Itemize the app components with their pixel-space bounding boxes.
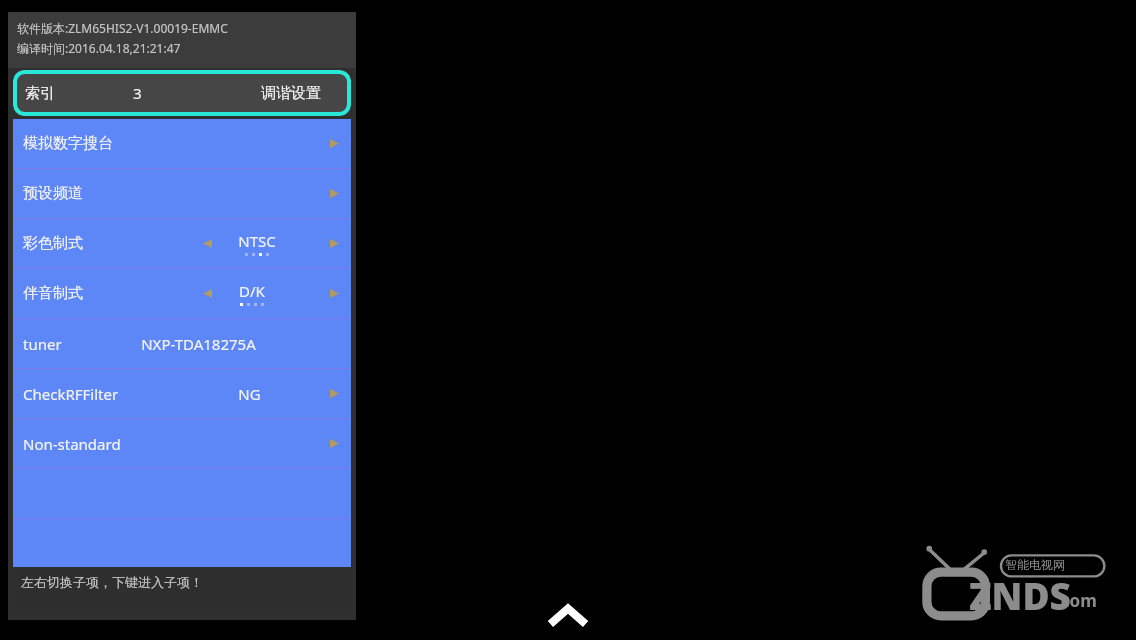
staticText: NTSC [238, 231, 276, 251]
button[interactable]: 伴音制式 [13, 269, 351, 318]
button[interactable]: 预设频道 [13, 169, 351, 218]
button[interactable]: 索引 [13, 70, 351, 116]
staticText: 左右切换子项，下键进入子项！ [21, 574, 203, 590]
staticText: Non-standard [23, 434, 121, 454]
staticText: 调谐设置 [261, 84, 321, 103]
staticText: ZNDS [969, 570, 1071, 620]
staticText: 编译时间:2016.04.18,21:21:47 [17, 40, 181, 56]
staticText: NXP-TDA18275A [141, 334, 256, 354]
button[interactable]: Scroll up [538, 598, 598, 634]
staticText: 伴音制式 [23, 284, 83, 303]
staticText: 3 [133, 83, 142, 103]
button[interactable]: 模拟数字搜台 [13, 119, 351, 168]
staticText: .com [1056, 589, 1097, 612]
button[interactable]: 彩色制式 [13, 219, 351, 268]
staticText: 智能电视网 [1005, 557, 1065, 572]
staticText: D/K [239, 281, 265, 301]
staticText: CheckRFFilter [23, 384, 119, 404]
staticText: 软件版本:ZLM65HIS2-V1.00019-EMMC [17, 20, 228, 36]
staticText: tuner [23, 334, 62, 354]
staticText: NG [238, 384, 261, 404]
staticText: 索引 [25, 84, 55, 103]
staticText: 彩色制式 [23, 234, 83, 253]
button[interactable]: Non-standard [13, 419, 351, 468]
button[interactable]: tuner [13, 319, 351, 368]
staticText: 预设频道 [23, 184, 83, 203]
button[interactable]: CheckRFFilter [13, 369, 351, 418]
staticText: 模拟数字搜台 [23, 134, 113, 153]
